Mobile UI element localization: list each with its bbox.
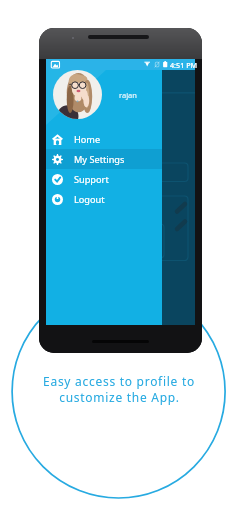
- staticText: My Settings: [74, 153, 125, 166]
- staticText: rajan: [119, 90, 137, 100]
- staticText: Logout: [74, 193, 105, 206]
- staticText: Easy access to profile to: [43, 373, 195, 389]
- button[interactable]: Support: [46, 169, 162, 189]
- staticText: 4:51 PM: [170, 60, 198, 70]
- button[interactable]: Home: [46, 129, 162, 149]
- button[interactable]: My Settings: [46, 149, 162, 169]
- staticText: customize the App.: [59, 389, 180, 405]
- button[interactable]: Logout: [46, 189, 162, 209]
- staticText: Home: [74, 133, 101, 146]
- staticText: Support: [74, 173, 109, 186]
